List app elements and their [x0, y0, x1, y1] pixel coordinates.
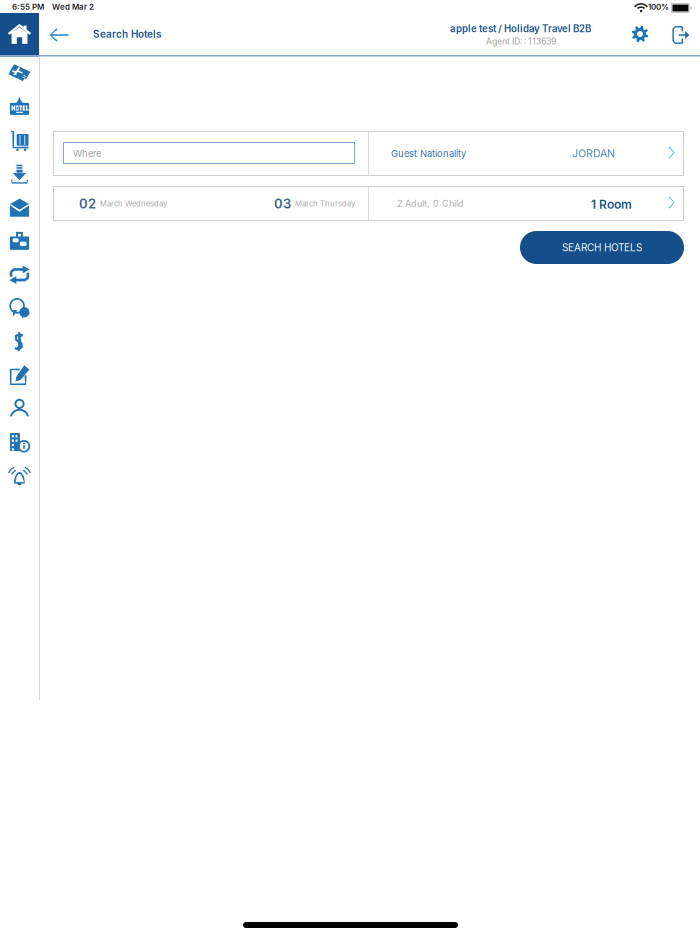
button[interactable]: Exchange — [0, 258, 39, 291]
staticText: Agent ID: : 113639 — [486, 36, 556, 46]
button[interactable]: Messages — [0, 191, 39, 224]
button[interactable]: SEARCH HOTELS — [520, 231, 684, 264]
button[interactable]: Back — [43, 21, 75, 49]
button[interactable]: Requests — [0, 358, 39, 392]
staticText: 1 Room — [591, 197, 632, 211]
staticText: JORDAN — [572, 147, 615, 160]
button[interactable]: Flights — [0, 57, 39, 90]
staticText: Where — [73, 148, 101, 159]
staticText: 100% — [648, 2, 669, 12]
button[interactable]: Payments — [0, 325, 39, 358]
button[interactable]: Guest Nationality, JORDAN — [369, 131, 684, 176]
staticText: 6:55 PM — [12, 2, 44, 12]
staticText: apple test / Holiday Travel B2B — [450, 23, 591, 35]
button[interactable]: Packages — [0, 124, 39, 157]
staticText: SEARCH HOTELS — [562, 241, 642, 254]
button[interactable]: Home — [0, 13, 39, 55]
staticText: 2 Adult, 0 Child — [397, 198, 464, 209]
staticText: Guest Nationality — [391, 148, 466, 159]
button[interactable]: Where — [53, 131, 368, 176]
button[interactable]: 2 Adult, 0 Child, 1 Room — [369, 186, 684, 221]
button[interactable]: My trips — [0, 224, 39, 258]
staticText: Wed Mar 2 — [52, 2, 94, 12]
button[interactable]: Settings — [625, 20, 655, 48]
staticText: March Wednesday — [100, 199, 167, 208]
staticText: 03 — [274, 196, 291, 212]
button[interactable]: Hotels — [0, 90, 39, 124]
button[interactable]: Check in 02 March Wednesday — [53, 186, 210, 221]
button[interactable]: Downloads — [0, 157, 39, 191]
staticText: 02 — [79, 196, 96, 212]
button[interactable]: Log out — [666, 21, 696, 49]
button[interactable]: Notifications — [0, 459, 39, 492]
staticText: March Thursday — [295, 199, 355, 208]
button[interactable]: Support chat — [0, 291, 39, 325]
button[interactable]: Search Hotels — [87, 20, 167, 48]
staticText: Search Hotels — [93, 28, 161, 40]
button[interactable]: Check out 03 March Thursday — [210, 186, 368, 221]
button[interactable]: Profile — [0, 392, 39, 425]
button[interactable]: Company info — [0, 425, 39, 459]
